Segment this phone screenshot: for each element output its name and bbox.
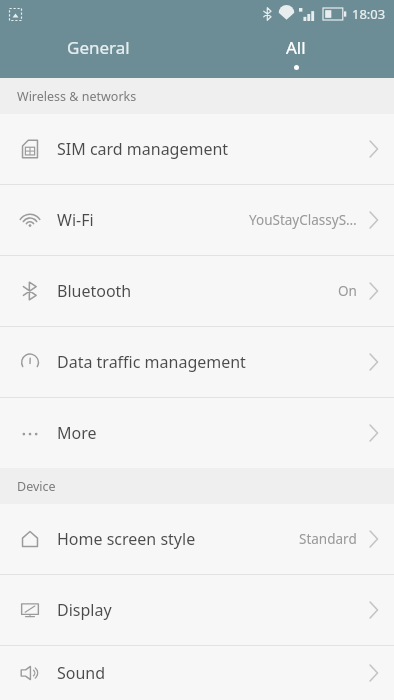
staticText: Bluetooth (57, 280, 132, 302)
staticText: SIM card management (57, 138, 229, 160)
staticText: All (286, 36, 306, 59)
button[interactable]: SIM card management (0, 114, 394, 184)
button[interactable]: Data traffic management (0, 327, 394, 397)
button[interactable]: Home screen style (0, 504, 394, 574)
button[interactable]: More (0, 398, 394, 468)
button[interactable]: Sound (0, 646, 394, 700)
staticText: Standard (299, 530, 357, 548)
staticText: Data traffic management (57, 351, 246, 373)
staticText: Display (57, 599, 112, 621)
staticText: On (338, 282, 357, 300)
staticText: General (67, 36, 130, 59)
button[interactable]: Wi-Fi (0, 185, 394, 255)
staticText: Wi-Fi (57, 209, 94, 231)
button[interactable]: Bluetooth (0, 256, 394, 326)
staticText: Device (17, 478, 56, 495)
staticText: Wireless & networks (17, 88, 137, 105)
staticText: YouStayClassyS… (249, 211, 357, 229)
staticText: More (57, 422, 97, 444)
button[interactable]: All (197, 28, 394, 78)
button[interactable]: Display (0, 575, 394, 645)
staticText: Home screen style (57, 528, 196, 550)
staticText: Sound (57, 662, 106, 684)
staticText: 18:03 (352, 5, 386, 23)
button[interactable]: General (0, 28, 197, 78)
